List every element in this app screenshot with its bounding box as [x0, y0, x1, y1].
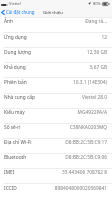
staticText: Viettel 28.0: [35, 94, 107, 101]
staticText: Nhà cung cấp: [4, 94, 35, 101]
staticText: Bluetooth: [4, 154, 27, 161]
staticText: Đang tả...: [13, 18, 107, 25]
button[interactable]: ICCID: [4, 185, 107, 199]
staticText: 80%: [93, 1, 101, 6]
button[interactable]: IMEI: [4, 169, 107, 183]
staticText: 10.3.1 (14E304): [27, 79, 107, 86]
staticText: IMEI: [4, 169, 15, 176]
staticText: Viettel: [9, 1, 21, 6]
staticText: Ảnh: [4, 18, 13, 25]
staticText: C38NKA0203MQ: [21, 124, 107, 131]
staticText: Địa chỉ Wi-Fi: [4, 139, 32, 146]
staticText: Ứng dụng: [4, 34, 27, 41]
staticText: MG4922PA/A: [25, 109, 107, 116]
staticText: 8984048000020569841: [17, 185, 107, 192]
button[interactable]: Kiểu máy: [4, 109, 107, 123]
staticText: 5,67 GB: [26, 64, 107, 71]
staticText: D8:BB:2C:5B:C9:17: [32, 139, 107, 146]
button[interactable]: Địa chỉ Wi-Fi: [4, 139, 107, 153]
staticText: Số sê-ri: [4, 124, 21, 131]
button[interactable]: Phiên bản: [4, 79, 107, 93]
button[interactable]: Ứng dụng: [4, 34, 107, 48]
staticText: Phiên bản: [4, 79, 27, 86]
staticText: Giới thiệu: [43, 9, 63, 15]
button[interactable]: Dung lượng: [4, 49, 107, 63]
staticText: 35 443406 708782 8: [15, 169, 107, 176]
button[interactable]: Nhà cung cấp: [4, 94, 107, 108]
staticText: 12: [27, 34, 107, 41]
button[interactable]: Khả dụng: [4, 64, 107, 78]
button[interactable]: Ảnh: [4, 18, 107, 32]
staticText: D8:BB:2C:5B:C9:06: [27, 154, 107, 161]
staticText: Khả dụng: [4, 64, 26, 71]
staticText: Kiểu máy: [4, 109, 25, 116]
button[interactable]: Bluetooth: [4, 154, 107, 168]
staticText: Cài đặt chung: [6, 9, 35, 15]
button[interactable]: Back: [1, 9, 35, 15]
staticText: ICCID: [4, 185, 17, 192]
staticText: Dung lượng: [4, 49, 31, 56]
button[interactable]: Số sê-ri: [4, 124, 107, 138]
staticText: 12,36 GB: [31, 49, 107, 56]
